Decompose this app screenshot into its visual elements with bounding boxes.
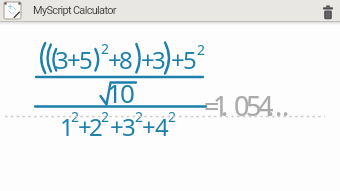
- staticText: 4: [258, 87, 274, 124]
- staticText: 3: [55, 43, 69, 76]
- staticText: =: [204, 87, 220, 124]
- staticText: .: [282, 87, 290, 124]
- staticText: 2: [197, 40, 206, 59]
- staticText: 1: [107, 75, 122, 110]
- staticText: 0: [120, 75, 135, 110]
- staticText: 4: [155, 110, 169, 143]
- staticText: +: [142, 110, 156, 143]
- staticText: 8: [119, 43, 133, 76]
- staticText: .: [267, 87, 275, 124]
- button[interactable]: [4, 2, 21, 19]
- staticText: +: [78, 110, 92, 143]
- staticText: 3: [152, 43, 166, 76]
- staticText: +: [67, 43, 81, 76]
- staticText: MyScript Calculator: [33, 4, 116, 17]
- staticText: 2: [101, 107, 110, 126]
- staticText: 2: [89, 110, 103, 143]
- staticText: 2: [135, 107, 144, 126]
- staticText: 0: [234, 87, 250, 124]
- staticText: .: [275, 87, 283, 124]
- staticText: 3: [122, 110, 136, 143]
- staticText: +: [141, 43, 155, 76]
- staticText: 1: [60, 110, 74, 143]
- staticText: .: [221, 87, 229, 124]
- staticText: 5: [183, 43, 197, 76]
- staticText: +: [171, 43, 185, 76]
- staticText: 5: [246, 87, 262, 124]
- staticText: 2: [101, 39, 110, 58]
- staticText: +: [108, 43, 122, 76]
- staticText: 2: [71, 107, 80, 126]
- staticText: 1: [213, 87, 229, 124]
- staticText: 5: [79, 43, 93, 76]
- button[interactable]: [317, 0, 338, 21]
- staticText: 2: [168, 107, 177, 126]
- staticText: +: [110, 110, 124, 143]
